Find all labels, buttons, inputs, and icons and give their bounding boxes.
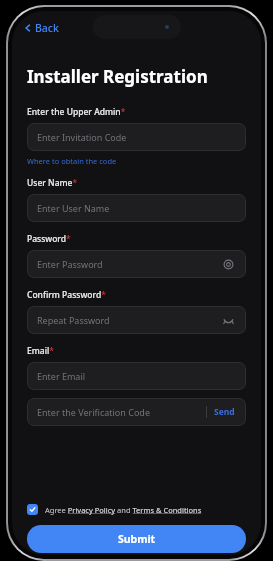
staticText: Submit xyxy=(118,532,156,546)
button[interactable]: Back xyxy=(21,18,62,38)
button[interactable]: Submit xyxy=(27,525,246,553)
button[interactable]: Send xyxy=(207,403,236,421)
button[interactable]: Repeat Password xyxy=(27,306,246,334)
button[interactable]: Agree Privacy Policy and Terms & Conditi… xyxy=(27,501,246,518)
staticText: Email* xyxy=(27,345,54,357)
staticText: Agree Privacy Policy and Terms & Conditi… xyxy=(45,505,202,515)
button[interactable]: Where to obtain the code xyxy=(27,156,117,166)
staticText: Send xyxy=(214,406,235,418)
button[interactable]: Enter Password xyxy=(27,250,246,278)
staticText: Repeat Password xyxy=(37,314,220,326)
staticText: Enter Invitation Code xyxy=(37,131,236,143)
staticText: Password* xyxy=(27,233,71,245)
staticText: Enter Password xyxy=(37,258,220,270)
staticText: User Name* xyxy=(27,177,78,189)
staticText: Installer Registration xyxy=(27,65,208,88)
button[interactable]: Enter User Name xyxy=(27,194,246,222)
button[interactable]: Enter the Verification Code xyxy=(27,398,246,426)
staticText: Confirm Password* xyxy=(27,289,106,301)
staticText: Enter Email xyxy=(37,370,236,382)
staticText: Enter User Name xyxy=(37,202,236,214)
button[interactable]: Enter Email xyxy=(27,362,246,390)
button[interactable]: Show password xyxy=(220,256,236,272)
staticText: Enter the Verification Code xyxy=(37,406,206,418)
button[interactable]: Enter Invitation Code xyxy=(27,123,246,151)
staticText: Enter the Upper Admin* xyxy=(27,106,126,118)
button[interactable]: Hide password xyxy=(220,312,236,328)
staticText: Back xyxy=(35,21,59,35)
